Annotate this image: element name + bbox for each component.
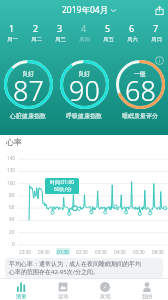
staticText: 2019年04月 <box>62 4 109 16</box>
button[interactable]: 7 <box>144 22 168 43</box>
staticText: 心脏健康指数 <box>10 112 46 120</box>
staticText: 睡眠质量评分 <box>122 112 158 120</box>
staticText: 100 <box>7 180 15 186</box>
staticText: 3 <box>57 22 63 34</box>
button[interactable]: 2 <box>24 22 48 43</box>
staticText: 平均心率：通常认为，成人在夜间睡眠期间的平均 <box>9 260 141 268</box>
staticText: 60 <box>9 204 15 210</box>
staticText: 1 <box>9 22 15 34</box>
staticText: 发现 <box>100 293 111 300</box>
button[interactable]: Info <box>154 55 165 66</box>
staticText: 140 <box>7 155 15 161</box>
button[interactable]: Share <box>150 1 168 19</box>
staticText: 良好 <box>78 70 90 78</box>
staticText: 周四 <box>79 36 90 43</box>
staticText: 一般 <box>134 70 146 78</box>
staticText: 90 <box>69 72 100 109</box>
staticText: 80 <box>9 192 15 198</box>
staticText: 周三 <box>55 36 66 43</box>
staticText: 5 <box>105 22 111 34</box>
staticText: 03:30 <box>95 249 107 255</box>
button[interactable]: 6 <box>120 22 144 43</box>
staticText: 05:30 <box>133 249 145 255</box>
staticText: 周五 <box>103 36 114 43</box>
button[interactable]: 3 <box>48 22 72 43</box>
staticText: 7 <box>153 22 159 34</box>
staticText: 周六 <box>127 36 138 43</box>
staticText: 40 <box>9 216 15 222</box>
staticText: 60次/分 <box>54 186 72 193</box>
staticText: 运动 <box>58 293 69 300</box>
staticText: 00:30 <box>38 249 50 255</box>
button[interactable]: 1 <box>0 22 24 43</box>
staticText: 良好 <box>22 70 34 78</box>
staticText: 04:30 <box>114 249 126 255</box>
button[interactable]: 2019年04月 <box>28 1 150 19</box>
staticText: 2 <box>33 22 39 34</box>
staticText: 87 <box>13 72 44 109</box>
staticText: 23:30 <box>19 249 31 255</box>
button[interactable]: 5 <box>96 22 120 43</box>
staticText: 心率的范围存在42-95次/分之间。 <box>9 268 99 276</box>
staticText: 120 <box>7 167 15 173</box>
staticText: 我的 <box>142 293 153 300</box>
button[interactable]: 测量 <box>0 279 42 300</box>
staticText: 02:30 <box>76 249 88 255</box>
button[interactable]: 我的 <box>126 279 168 300</box>
staticText: 测量 <box>16 293 27 300</box>
staticText: 周日 <box>151 36 162 43</box>
staticText: 心率 <box>6 137 22 147</box>
button[interactable]: 4 <box>72 22 96 43</box>
staticText: 06:30 <box>152 249 164 255</box>
staticText: 68 <box>125 72 156 109</box>
staticText: 呼吸健康指数 <box>66 112 102 120</box>
button[interactable]: 平均心率：通常认为，成人在夜间睡眠期间的平均 <box>5 258 163 278</box>
staticText: 周一 <box>7 36 18 43</box>
staticText: 周二 <box>31 36 42 43</box>
staticText: 时间:01:00 <box>50 179 75 186</box>
staticText: 6 <box>129 22 135 34</box>
button[interactable]: 发现 <box>84 279 126 300</box>
staticText: 0 <box>12 241 15 247</box>
staticText: 4 <box>81 22 87 34</box>
button[interactable]: 运动 <box>42 279 84 300</box>
staticText: 01:30 <box>57 249 69 254</box>
staticText: 20 <box>9 229 15 235</box>
